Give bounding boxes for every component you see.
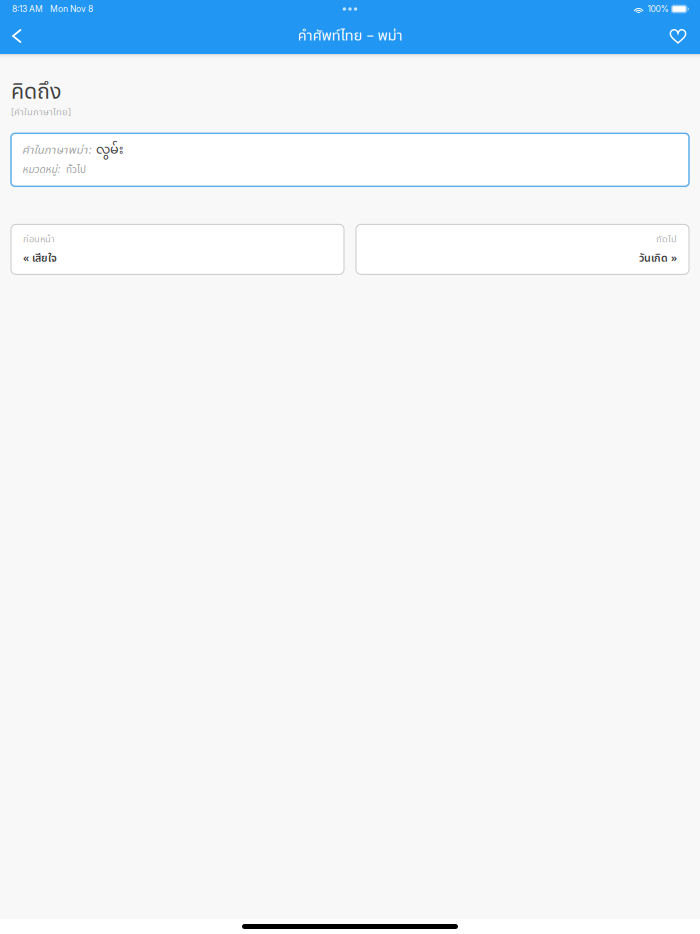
staticText: Mon Nov 8: [50, 4, 93, 14]
staticText: « เสียใจ: [23, 250, 57, 266]
staticText: 100%: [648, 4, 669, 14]
staticText: လွမ်း: [96, 137, 123, 165]
staticText: ถัดไป: [656, 232, 677, 246]
staticText: หมวดหมู่:: [22, 162, 60, 177]
staticText: ก่อนหน้า: [23, 232, 55, 246]
button[interactable]: Favourite: [659, 18, 697, 54]
button[interactable]: ถัดไป: [356, 224, 689, 274]
staticText: [คำในภาษาไทย]: [11, 105, 71, 119]
staticText: คำศัพท์ไทย – พม่า: [297, 25, 402, 47]
button[interactable]: Back: [0, 18, 34, 54]
staticText: ทั่วไป: [66, 162, 86, 177]
staticText: คิดถึง: [11, 76, 61, 108]
staticText: คำในภาษาพม่า:: [22, 142, 91, 159]
staticText: 8:13 AM: [12, 4, 43, 14]
staticText: วันเกิด »: [639, 250, 677, 266]
button[interactable]: ก่อนหน้า: [11, 224, 344, 274]
